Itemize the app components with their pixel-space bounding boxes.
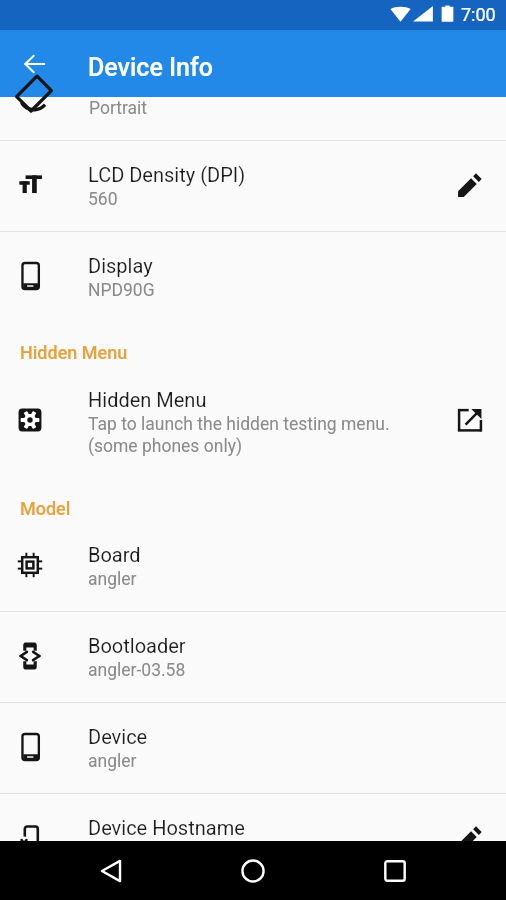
staticText: Display bbox=[88, 254, 153, 277]
staticText: Board bbox=[88, 543, 141, 566]
staticText: LCD Density (DPI) bbox=[88, 163, 246, 186]
button[interactable]: Back bbox=[12, 41, 58, 87]
button[interactable]: Edit bbox=[457, 172, 483, 198]
button[interactable]: Portrait bbox=[0, 97, 506, 141]
staticText: Hidden Menu bbox=[20, 342, 128, 363]
staticText: Model bbox=[20, 498, 71, 519]
staticText: Device bbox=[88, 725, 148, 748]
staticText: angler bbox=[88, 569, 137, 590]
staticText: Hidden Menu bbox=[88, 388, 207, 411]
staticText: Device Hostname bbox=[88, 816, 245, 839]
button[interactable]: Recent apps bbox=[371, 841, 419, 900]
staticText: nexus bbox=[88, 842, 135, 863]
staticText: Device Info bbox=[88, 53, 213, 82]
button[interactable]: Display bbox=[0, 232, 506, 323]
staticText: angler bbox=[88, 751, 137, 772]
button[interactable]: Edit bbox=[457, 825, 483, 851]
button[interactable]: Back bbox=[87, 841, 135, 900]
button[interactable]: Hidden Menu bbox=[0, 365, 506, 479]
button[interactable]: Edit bbox=[457, 407, 483, 433]
staticText: NPD90G bbox=[88, 280, 155, 301]
staticText: 7:00 bbox=[461, 4, 496, 25]
button[interactable]: LCD Density (DPI) bbox=[0, 141, 506, 232]
button[interactable]: Board bbox=[0, 521, 506, 612]
staticText: 560 bbox=[88, 189, 118, 210]
staticText: angler-03.58 bbox=[88, 660, 186, 681]
button[interactable]: Device Hostname bbox=[0, 794, 506, 885]
button[interactable]: Device bbox=[0, 703, 506, 794]
staticText: Portrait bbox=[89, 98, 148, 119]
button[interactable]: Bootloader bbox=[0, 612, 506, 703]
staticText: Bootloader bbox=[88, 634, 186, 657]
staticText: Tap to launch the hidden testing menu. (… bbox=[88, 414, 390, 456]
button[interactable]: Home bbox=[229, 841, 277, 900]
